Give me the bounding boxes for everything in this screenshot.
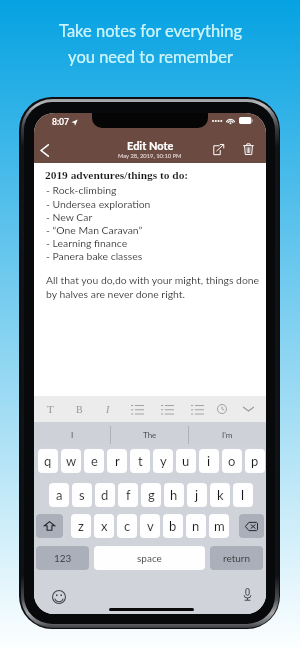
staticText: I	[71, 430, 74, 440]
button[interactable]: g	[141, 483, 161, 507]
staticText: d	[101, 487, 109, 503]
button[interactable]: n	[186, 514, 206, 538]
button[interactable]: z	[71, 514, 91, 538]
staticText: f	[126, 487, 131, 503]
button[interactable]: Shift	[36, 514, 63, 538]
button[interactable]: The	[111, 422, 188, 447]
button[interactable]: w	[61, 449, 81, 473]
staticText: n	[192, 518, 200, 534]
staticText: z	[78, 518, 84, 534]
button[interactable]: o	[222, 449, 242, 473]
button[interactable]: Recent	[209, 396, 235, 422]
button[interactable]: Italic	[95, 396, 121, 422]
staticText: B	[76, 404, 83, 415]
staticText: a	[56, 487, 63, 503]
button[interactable]: a	[49, 483, 69, 507]
button[interactable]: i	[199, 449, 219, 473]
button[interactable]: return	[210, 546, 263, 570]
button[interactable]: r	[107, 449, 127, 473]
staticText: return	[223, 552, 251, 564]
staticText: All that you do,do with your might, thin…	[46, 274, 264, 300]
button[interactable]: 123	[36, 546, 89, 570]
button[interactable]: c	[117, 514, 137, 538]
button[interactable]: I'm	[189, 422, 266, 447]
staticText: v	[147, 518, 154, 534]
button[interactable]: Backspace	[239, 514, 264, 538]
staticText: x	[101, 518, 108, 534]
button[interactable]: p	[245, 449, 265, 473]
staticText: I'm	[222, 430, 233, 440]
button[interactable]: d	[95, 483, 115, 507]
staticText: h	[170, 487, 178, 503]
staticText: e	[91, 453, 98, 469]
staticText: T	[47, 403, 54, 415]
staticText: k	[217, 487, 224, 503]
button[interactable]: Delete note	[236, 137, 260, 161]
staticText: o	[228, 453, 236, 469]
button[interactable]: f	[118, 483, 138, 507]
button[interactable]: v	[140, 514, 160, 538]
button[interactable]: Numbered list	[184, 396, 210, 422]
staticText: space	[137, 552, 162, 564]
button[interactable]: Emoji	[50, 588, 67, 605]
button[interactable]: h	[164, 483, 184, 507]
staticText: The	[143, 430, 157, 440]
button[interactable]: Share note	[206, 137, 230, 161]
staticText: g	[148, 487, 155, 503]
button[interactable]: I	[34, 422, 110, 447]
button[interactable]: Back	[34, 137, 57, 163]
staticText: Take notes for everything you need to re…	[59, 21, 242, 66]
staticText: May 28, 2019, 10:10 PM	[118, 152, 182, 159]
button[interactable]: l	[233, 483, 253, 507]
button[interactable]: e	[84, 449, 104, 473]
button[interactable]: k	[210, 483, 230, 507]
button[interactable]: m	[209, 514, 229, 538]
button[interactable]: b	[163, 514, 183, 538]
staticText: q	[44, 453, 52, 469]
button[interactable]: s	[72, 483, 92, 507]
staticText: I	[106, 404, 110, 415]
button[interactable]: u	[176, 449, 196, 473]
button[interactable]: j	[187, 483, 207, 507]
staticText: 2019 adventures/things to do:	[45, 169, 189, 182]
button[interactable]: q	[38, 449, 58, 473]
staticText: t	[138, 453, 143, 469]
staticText: b	[169, 518, 177, 534]
button[interactable]: Dictate	[239, 586, 256, 603]
staticText: j	[195, 487, 199, 503]
staticText: 8:07	[52, 117, 69, 127]
staticText: r	[115, 453, 120, 469]
button[interactable]: t	[130, 449, 150, 473]
staticText: y	[160, 453, 167, 469]
button[interactable]: Font	[37, 396, 63, 422]
staticText: 123	[54, 552, 72, 564]
staticText: c	[124, 518, 131, 534]
button[interactable]: Bold	[66, 396, 92, 422]
staticText: p	[251, 453, 259, 469]
staticText: l	[241, 487, 245, 503]
button[interactable]: Dashed list	[154, 396, 180, 422]
staticText: s	[79, 487, 85, 503]
button[interactable]: space	[94, 546, 205, 570]
button[interactable]: Hide keyboard	[235, 396, 261, 422]
button[interactable]: y	[153, 449, 173, 473]
staticText: w	[66, 453, 77, 469]
staticText: - Rock-climbing - Undersea exploration -…	[46, 184, 151, 262]
button[interactable]: x	[94, 514, 114, 538]
button[interactable]: Bulleted list	[124, 396, 150, 422]
staticText: u	[182, 453, 190, 469]
staticText: Edit Note	[127, 139, 174, 152]
staticText: m	[214, 518, 225, 534]
staticText: i	[207, 453, 211, 469]
